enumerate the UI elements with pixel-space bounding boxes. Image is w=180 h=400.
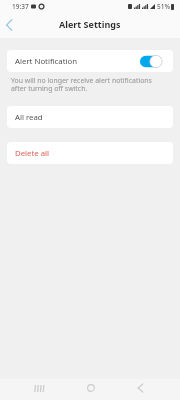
button[interactable]: Alert Notification	[7, 50, 173, 72]
staticText: Alert Notification	[15, 56, 78, 67]
button[interactable]: Home	[76, 379, 106, 397]
button[interactable]: Back	[125, 379, 155, 397]
button[interactable]: Alert Notification toggle	[140, 55, 163, 68]
button[interactable]: Recent apps	[24, 379, 54, 397]
button[interactable]: Delete all	[7, 142, 173, 164]
staticText: 19:37	[12, 2, 29, 11]
button[interactable]: All read	[7, 106, 173, 128]
staticText: 51%	[157, 2, 170, 11]
button[interactable]: Back	[1, 17, 17, 33]
staticText: Alert Settings	[59, 18, 121, 30]
staticText: You will no longer receive alert notific…	[11, 76, 152, 93]
staticText: Delete all	[15, 148, 50, 159]
staticText: All read	[15, 112, 43, 123]
